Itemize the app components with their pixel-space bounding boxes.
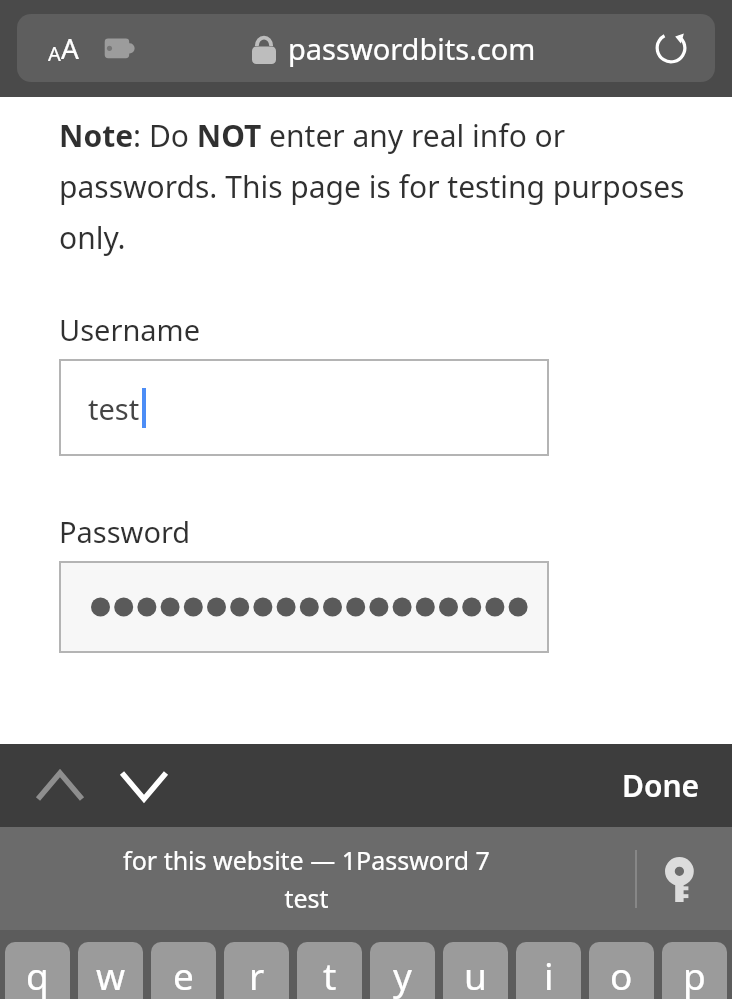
staticText: test <box>284 881 329 915</box>
staticText: A <box>48 40 61 67</box>
staticText: Done <box>622 765 700 806</box>
staticText: r <box>249 950 265 999</box>
button[interactable]: y <box>370 942 435 999</box>
button[interactable]: Done <box>614 757 708 814</box>
button[interactable]: Previous field <box>24 753 96 819</box>
button[interactable]: u <box>443 942 508 999</box>
staticText: Password <box>59 512 191 551</box>
button[interactable]: for this website — 1Password 7 <box>0 843 612 915</box>
button[interactable]: Reload <box>647 24 695 72</box>
button[interactable]: p <box>662 942 727 999</box>
staticText: e <box>173 950 194 999</box>
staticText: y <box>393 950 412 999</box>
staticText: passwordbits.com <box>288 29 536 68</box>
staticText: test <box>88 389 140 428</box>
button[interactable]: e <box>151 942 216 999</box>
staticText: q <box>26 950 49 999</box>
button[interactable]: Extensions <box>97 26 141 70</box>
button[interactable]: w <box>78 942 143 999</box>
staticText: o <box>610 950 633 999</box>
button[interactable]: i <box>516 942 581 999</box>
button[interactable] <box>59 561 549 653</box>
button[interactable]: Passwords <box>650 849 710 909</box>
staticText: A <box>61 29 79 67</box>
staticText: Note: Do NOT enter any real info or pass… <box>59 115 708 258</box>
button[interactable]: r <box>224 942 289 999</box>
staticText: i <box>544 950 554 999</box>
staticText: u <box>464 950 487 999</box>
button[interactable]: test <box>59 359 549 456</box>
staticText: w <box>96 950 126 999</box>
staticText: for this website — 1Password 7 <box>123 843 490 877</box>
button[interactable]: t <box>297 942 362 999</box>
staticText: p <box>683 950 706 999</box>
button[interactable]: Page settings <box>37 24 89 72</box>
staticText: Username <box>59 310 201 349</box>
button[interactable]: q <box>5 942 70 999</box>
staticText: t <box>323 950 337 999</box>
button[interactable]: Next field <box>108 753 180 819</box>
button[interactable]: o <box>589 942 654 999</box>
